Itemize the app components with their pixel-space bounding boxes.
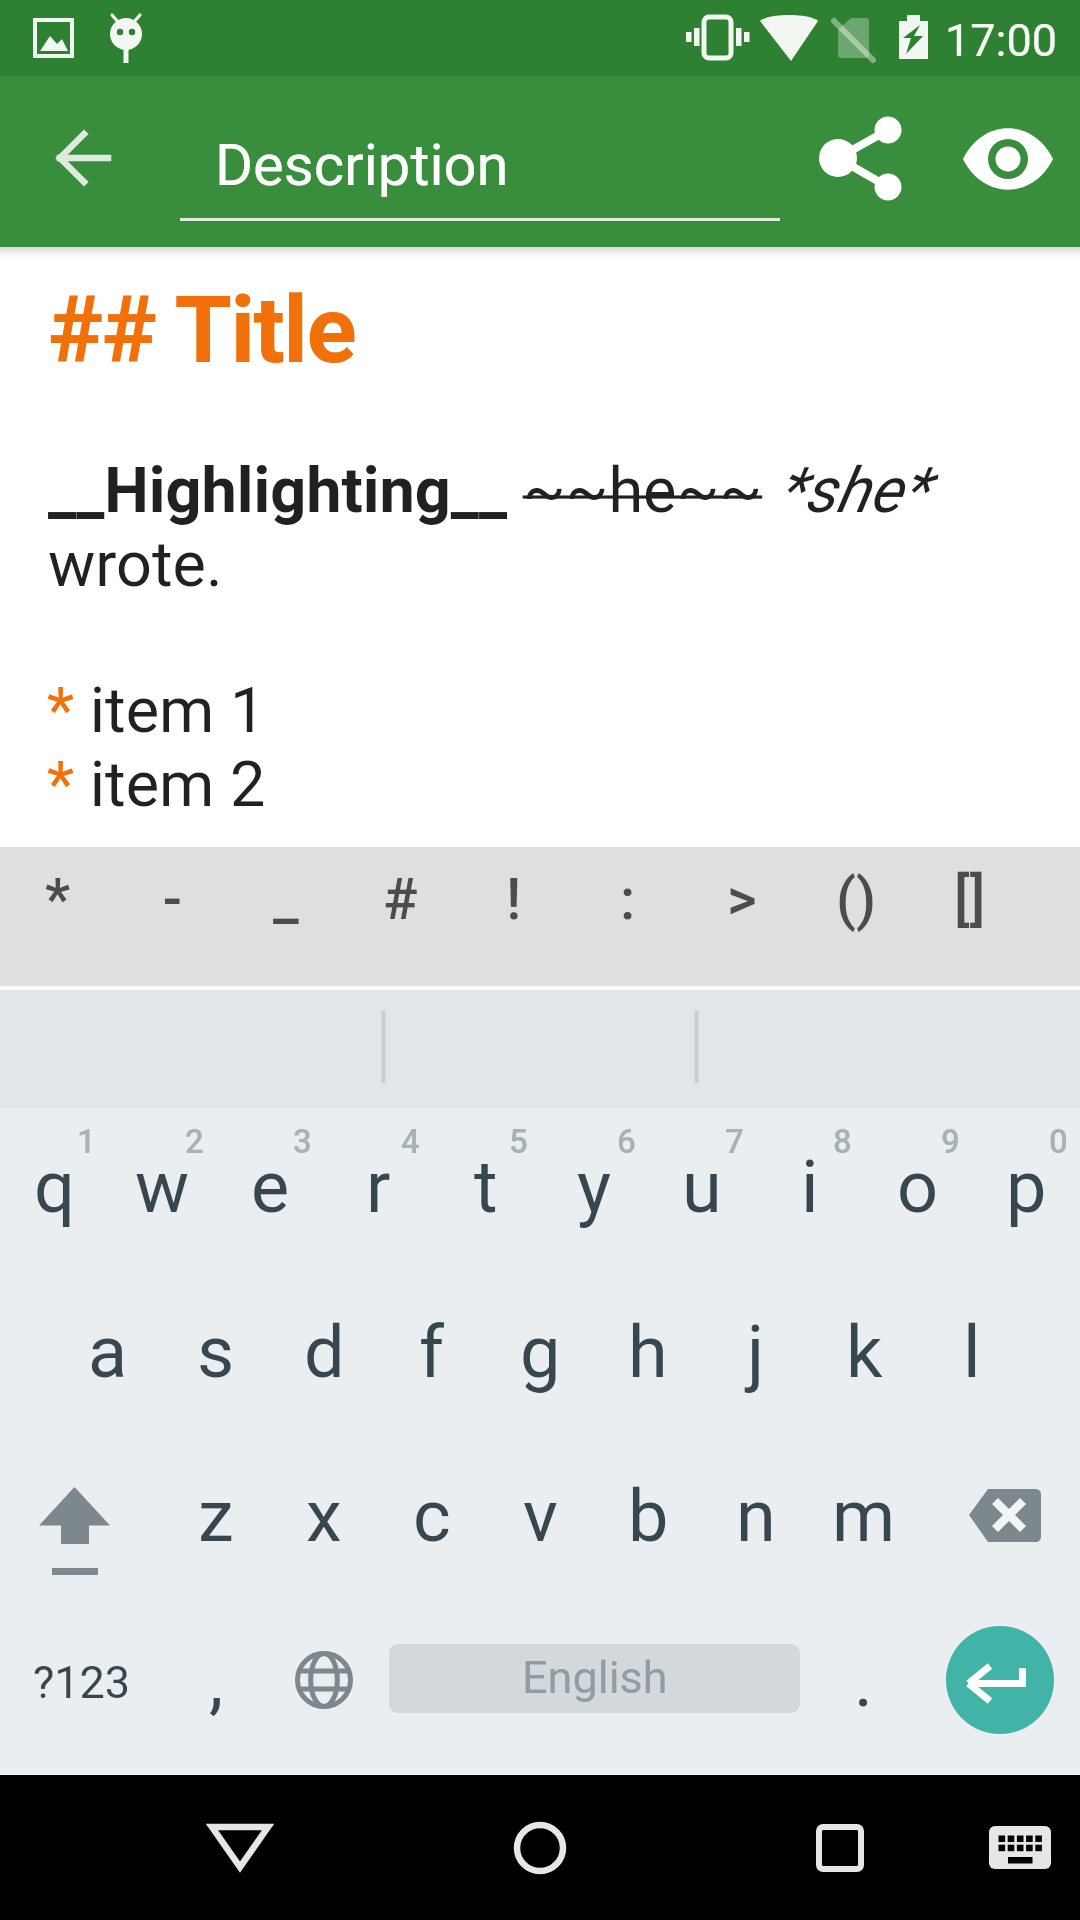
button[interactable]: ! [457,849,571,949]
button[interactable]: . [815,1608,911,1728]
button[interactable]: u [648,1145,756,1231]
staticText: 8 [833,1122,852,1161]
staticText: __Highlighting__ ~~he~~ *she* wrote. [48,454,978,601]
staticText: - [163,866,182,933]
button[interactable]: : [571,849,685,949]
staticText: a [88,1310,128,1394]
button[interactable]: Back [36,86,132,182]
button[interactable]: English [389,1644,800,1713]
button[interactable]: s [162,1310,270,1396]
button[interactable]: _ [229,849,343,949]
button[interactable]: Back [170,1800,310,1900]
staticText: * [45,866,71,933]
staticText: b [628,1474,669,1558]
staticText: > [727,866,757,933]
staticText: 2 [185,1122,204,1161]
button[interactable]: h [594,1310,702,1396]
button[interactable]: a [54,1310,162,1396]
staticText: m [832,1474,896,1558]
staticText: d [304,1310,345,1394]
staticText: p [1006,1145,1047,1229]
staticText: 6 [617,1122,636,1161]
staticText: # [383,866,418,933]
button[interactable]: g [486,1310,594,1396]
button[interactable]: m [810,1474,918,1560]
button[interactable]: ?123 [0,1608,168,1728]
button[interactable]: p [972,1145,1080,1231]
button[interactable]: , [168,1608,264,1728]
button[interactable]: n [702,1474,810,1560]
button[interactable]: r [324,1145,432,1231]
button[interactable]: f [378,1310,486,1396]
staticText: ?123 [33,1656,131,1709]
staticText: 5 [509,1122,528,1161]
button[interactable]: * [1,849,115,949]
button[interactable]: Enter [946,1626,1054,1734]
staticText: , [209,1639,224,1723]
staticText: j [747,1310,765,1394]
button[interactable]: y [540,1145,648,1231]
button[interactable]: Shift [0,1463,150,1593]
staticText: h [628,1310,668,1394]
button[interactable]: > [685,849,799,949]
staticText: n [736,1474,776,1558]
staticText: () [836,866,877,933]
button[interactable]: # [343,849,457,949]
button[interactable]: Share [815,111,911,207]
button[interactable]: k [810,1310,918,1396]
staticText: ## Title [48,276,356,385]
staticText: 0 [1049,1122,1068,1161]
staticText: z [198,1474,234,1558]
staticText: : [620,866,636,933]
button[interactable]: q [0,1145,108,1231]
button[interactable]: Recents [770,1800,910,1900]
staticText: _ [273,866,299,933]
staticText: f [419,1310,445,1394]
staticText: w [135,1145,190,1229]
button[interactable]: w [108,1145,216,1231]
staticText: 3 [293,1122,312,1161]
button[interactable]: b [594,1474,702,1560]
staticText: 9 [941,1122,960,1161]
button[interactable]: v [486,1474,594,1560]
staticText: ! [506,866,522,933]
button[interactable]: j [702,1310,810,1396]
button[interactable]: t [432,1145,540,1231]
button[interactable]: d [270,1310,378,1396]
button[interactable]: Preview [960,111,1056,207]
button[interactable]: c [378,1474,486,1560]
button[interactable]: o [864,1145,972,1231]
button[interactable]: z [162,1474,270,1560]
staticText: English [522,1651,668,1704]
staticText: 17:00 [945,14,1058,67]
staticText: s [197,1310,235,1394]
button[interactable]: () [799,849,913,949]
button[interactable]: - [115,849,229,949]
button[interactable]: [] [913,849,1027,949]
button[interactable]: i [756,1145,864,1231]
staticText: t [474,1145,498,1229]
staticText: g [520,1310,561,1394]
button[interactable]: Change language [272,1608,376,1728]
button[interactable]: Switch keyboard [960,1800,1080,1900]
staticText: * item 1 * item 2 [47,674,266,821]
button[interactable]: Home [470,1800,610,1900]
staticText: q [34,1145,75,1229]
staticText: l [963,1310,981,1394]
button[interactable]: x [270,1474,378,1560]
staticText: u [682,1145,722,1229]
staticText: 7 [725,1122,744,1161]
staticText: r [366,1145,391,1229]
staticText: c [413,1474,451,1558]
button[interactable]: Backspace [940,1463,1070,1593]
staticText: 4 [401,1122,420,1161]
staticText: i [801,1145,819,1229]
staticText: k [846,1310,883,1394]
staticText: 1 [77,1122,96,1161]
staticText: [] [954,866,986,933]
staticText: v [523,1474,558,1558]
staticText: Description [215,131,509,199]
staticText: y [577,1145,612,1229]
button[interactable]: e [216,1145,324,1231]
button[interactable]: l [918,1310,1026,1396]
